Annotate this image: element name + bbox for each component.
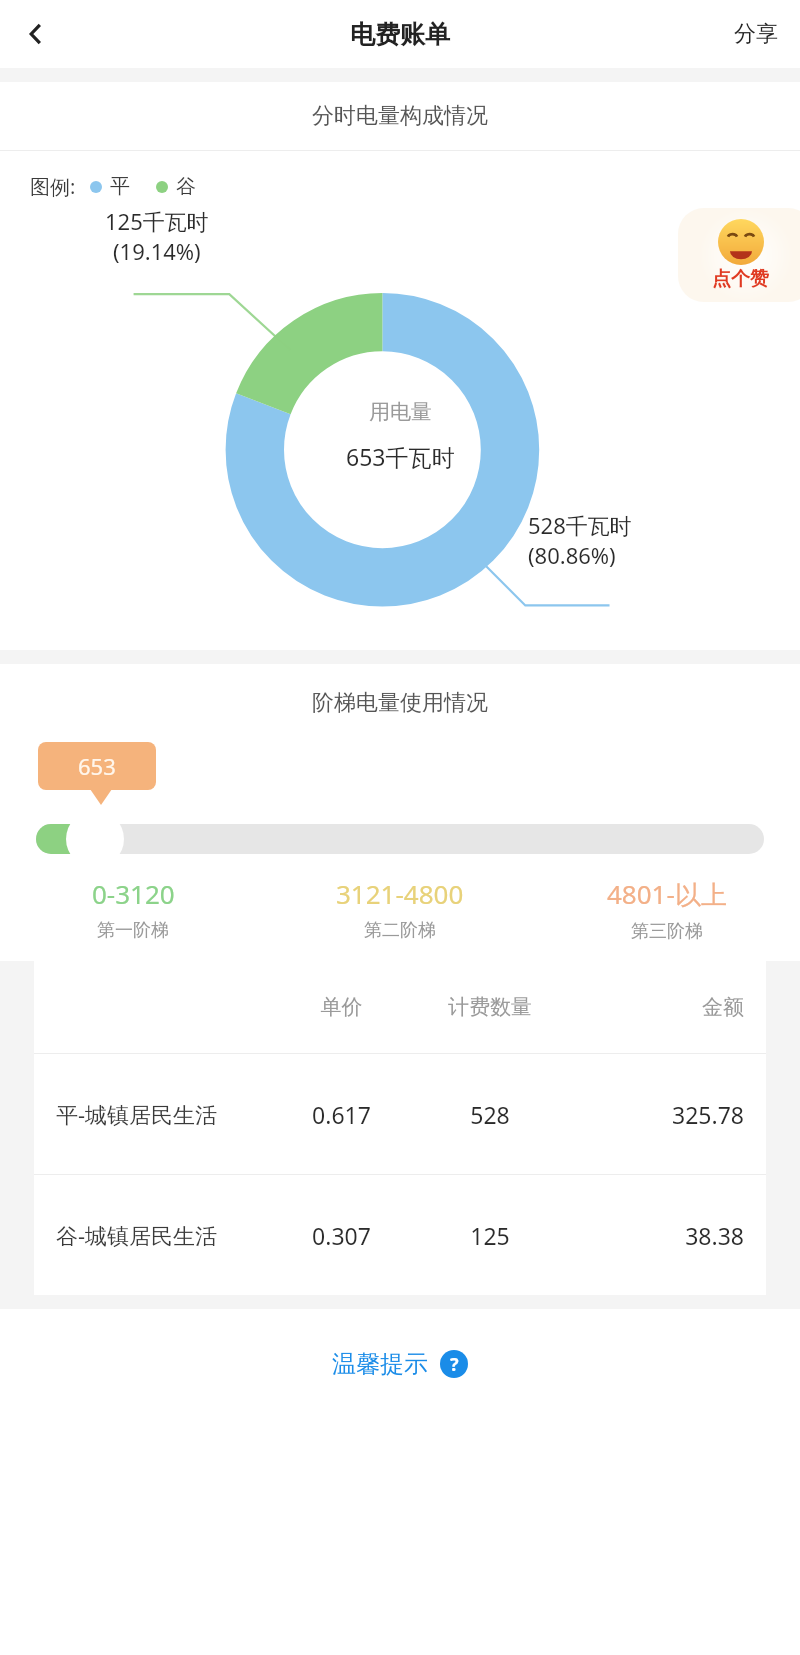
staticText: 平 bbox=[110, 174, 130, 199]
button[interactable]: 用电量滑块 bbox=[66, 810, 124, 868]
button[interactable]: 分享 bbox=[712, 8, 800, 60]
staticText: 0-3120 bbox=[92, 876, 175, 911]
staticText: 用电量 bbox=[369, 399, 432, 425]
staticText: 金额 bbox=[577, 994, 744, 1020]
staticText: 平-城镇居民生活 bbox=[56, 1099, 280, 1129]
staticText: 653千瓦时 bbox=[346, 441, 455, 472]
staticText: 点个赞 bbox=[712, 267, 769, 291]
staticText: 528千瓦时 bbox=[528, 510, 632, 540]
staticText: 分享 bbox=[734, 20, 778, 48]
staticText: 阶梯电量使用情况 bbox=[312, 689, 488, 717]
button[interactable]: 平-城镇居民生活 bbox=[34, 1054, 766, 1174]
staticText: 谷 bbox=[176, 174, 196, 199]
staticText: 图例: bbox=[30, 173, 76, 200]
staticText: 528 bbox=[403, 1099, 577, 1130]
staticText: 第一阶梯 bbox=[97, 919, 169, 942]
staticText: 0.307 bbox=[280, 1220, 403, 1251]
staticText: 谷-城镇居民生活 bbox=[56, 1220, 280, 1250]
staticText: 分时电量构成情况 bbox=[312, 102, 488, 130]
button[interactable]: 温馨提示 bbox=[312, 1339, 488, 1389]
staticText: 第三阶梯 bbox=[631, 920, 703, 943]
staticText: (80.86%) bbox=[528, 540, 616, 570]
staticText: 电费账单 bbox=[350, 19, 450, 50]
staticText: 325.78 bbox=[577, 1099, 744, 1130]
staticText: 38.38 bbox=[577, 1220, 744, 1251]
staticText: 125千瓦时 bbox=[105, 206, 209, 236]
staticText: 653 bbox=[78, 751, 116, 781]
staticText: 4801-以上 bbox=[607, 876, 727, 912]
staticText: (19.14%) bbox=[113, 236, 201, 266]
staticText: 第二阶梯 bbox=[364, 919, 436, 942]
button[interactable]: 点个赞 bbox=[678, 208, 800, 302]
button[interactable]: 谷-城镇居民生活 bbox=[34, 1175, 766, 1295]
staticText: 3121-4800 bbox=[336, 876, 464, 911]
staticText: 125 bbox=[403, 1220, 577, 1251]
staticText: ? bbox=[450, 1352, 459, 1377]
button[interactable]: Back bbox=[8, 6, 64, 62]
staticText: 温馨提示 bbox=[332, 1349, 428, 1379]
staticText: 计费数量 bbox=[403, 994, 577, 1020]
staticText: 0.617 bbox=[280, 1099, 403, 1130]
staticText: 单价 bbox=[280, 994, 403, 1020]
